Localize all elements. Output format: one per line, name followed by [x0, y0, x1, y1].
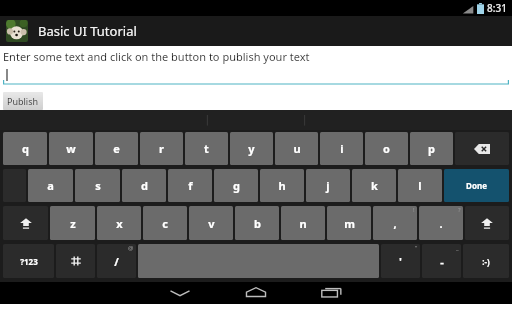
- staticText: d: [141, 178, 148, 193]
- button[interactable]: Recent apps: [315, 282, 349, 304]
- button[interactable]: Shift: [465, 206, 509, 240]
- button[interactable]: y: [230, 132, 273, 165]
- button[interactable]: w: [49, 132, 93, 165]
- staticText: p: [428, 141, 435, 156]
- button[interactable]: d: [122, 169, 166, 202]
- staticText: ?: [458, 206, 461, 214]
- button[interactable]: Shift: [3, 206, 48, 240]
- button[interactable]: k: [352, 169, 396, 202]
- button[interactable]: n: [281, 206, 325, 240]
- button[interactable]: u: [275, 132, 318, 165]
- button[interactable]: e: [95, 132, 138, 165]
- staticText: b: [254, 216, 261, 231]
- staticText: x: [116, 216, 123, 231]
- button[interactable]: [3, 67, 509, 85]
- staticText: 8:31: [487, 1, 507, 15]
- staticText: s: [95, 178, 101, 193]
- staticText: t: [204, 141, 209, 156]
- button[interactable]: q: [3, 132, 47, 165]
- staticText: _: [456, 244, 459, 252]
- staticText: !: [413, 206, 415, 214]
- button[interactable]: Backspace: [455, 132, 509, 165]
- button[interactable]: g: [214, 169, 258, 202]
- staticText: ": [415, 244, 418, 252]
- button[interactable]: :-): [463, 244, 509, 278]
- staticText: c: [162, 216, 168, 231]
- staticText: k: [371, 178, 378, 193]
- staticText: n: [299, 216, 307, 231]
- button[interactable]: r: [140, 132, 183, 165]
- staticText: m: [344, 216, 355, 231]
- button[interactable]: Done: [444, 169, 509, 202]
- staticText: h: [278, 178, 286, 193]
- button[interactable]: i: [320, 132, 363, 165]
- button[interactable]: Change input language: [56, 244, 95, 278]
- button[interactable]: -: [422, 244, 461, 278]
- staticText: .: [439, 216, 443, 231]
- staticText: f: [188, 178, 193, 193]
- staticText: /: [114, 254, 119, 269]
- button[interactable]: Hide keyboard: [163, 282, 197, 304]
- staticText: a: [47, 178, 54, 193]
- button[interactable]: a: [28, 169, 73, 202]
- button[interactable]: f: [168, 169, 212, 202]
- staticText: @: [128, 244, 134, 252]
- button[interactable]: h: [260, 169, 304, 202]
- button[interactable]: ': [381, 244, 420, 278]
- button[interactable]: p: [410, 132, 453, 165]
- button[interactable]: .: [419, 206, 463, 240]
- staticText: g: [233, 178, 240, 193]
- staticText: ,: [393, 216, 397, 231]
- staticText: o: [383, 141, 390, 156]
- staticText: ?123: [20, 256, 38, 267]
- button[interactable]: c: [143, 206, 187, 240]
- button[interactable]: t: [185, 132, 228, 165]
- staticText: r: [159, 141, 164, 156]
- button[interactable]: ?123: [3, 244, 54, 278]
- staticText: z: [70, 216, 76, 231]
- button[interactable]: v: [189, 206, 233, 240]
- button[interactable]: z: [50, 206, 95, 240]
- button[interactable]: m: [327, 206, 371, 240]
- staticText: q: [22, 141, 29, 156]
- staticText: ': [399, 254, 402, 269]
- staticText: i: [340, 141, 344, 156]
- button[interactable]: j: [306, 169, 350, 202]
- button[interactable]: Publish: [3, 92, 43, 110]
- staticText: Done: [466, 180, 487, 191]
- staticText: l: [418, 178, 422, 193]
- button[interactable]: b: [235, 206, 279, 240]
- staticText: -: [440, 254, 444, 269]
- button[interactable]: /: [97, 244, 136, 278]
- button[interactable]: x: [97, 206, 141, 240]
- button[interactable]: Home: [239, 282, 273, 304]
- staticText: v: [208, 216, 215, 231]
- staticText: u: [293, 141, 301, 156]
- staticText: Basic UI Tutorial: [38, 22, 137, 40]
- staticText: Enter some text and click on the button …: [3, 49, 310, 64]
- staticText: j: [326, 178, 330, 193]
- button[interactable]: ,: [373, 206, 417, 240]
- button[interactable]: o: [365, 132, 408, 165]
- staticText: w: [66, 141, 76, 156]
- staticText: y: [248, 141, 255, 156]
- staticText: :-): [482, 256, 490, 267]
- staticText: e: [113, 141, 120, 156]
- button[interactable]: l: [398, 169, 442, 202]
- staticText: Publish: [7, 95, 39, 107]
- button[interactable]: s: [75, 169, 120, 202]
